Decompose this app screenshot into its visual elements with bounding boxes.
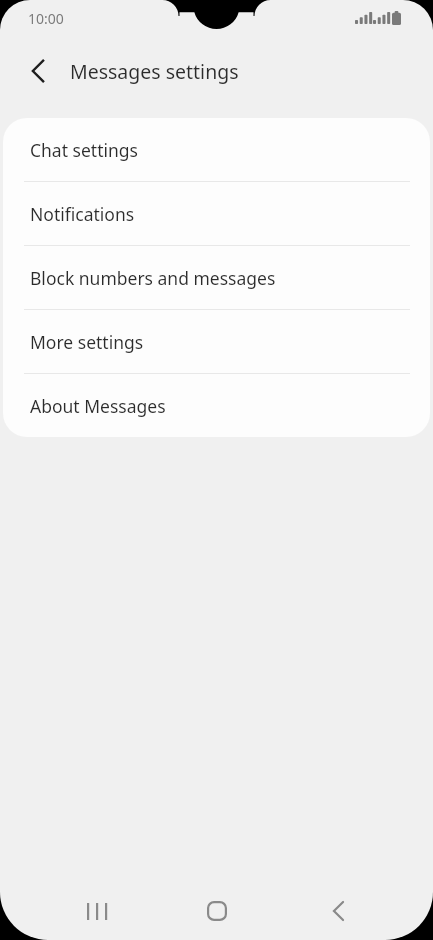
button[interactable]: Navigate up <box>16 49 60 93</box>
staticText: More settings <box>30 330 144 354</box>
staticText: Notifications <box>30 202 135 226</box>
button[interactable]: About Messages <box>3 374 430 437</box>
staticText: Chat settings <box>30 138 138 162</box>
staticText: Messages settings <box>70 58 239 85</box>
button[interactable]: More settings <box>3 310 430 373</box>
staticText: About Messages <box>30 394 166 418</box>
button[interactable]: Chat settings <box>3 118 430 181</box>
button[interactable]: Notifications <box>3 182 430 245</box>
button[interactable]: Block numbers and messages <box>3 246 430 309</box>
button[interactable]: Home <box>193 887 241 935</box>
button[interactable]: Back <box>314 887 362 935</box>
staticText: Block numbers and messages <box>30 266 276 290</box>
staticText: 10:00 <box>28 9 64 28</box>
button[interactable]: Recent apps <box>72 887 120 935</box>
